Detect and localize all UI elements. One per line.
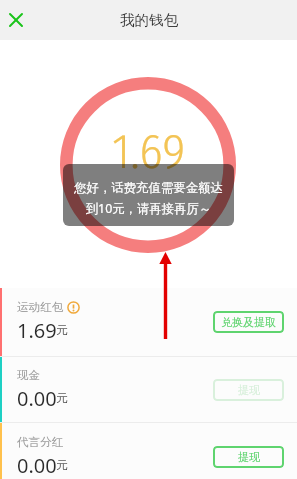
staticText: 代言分红	[17, 435, 64, 450]
staticText: 我的钱包	[120, 11, 178, 29]
staticText: 0.00	[17, 452, 57, 479]
staticText: 提现	[238, 383, 260, 397]
button[interactable]: 运动红包	[0, 288, 297, 356]
staticText: 1.69	[17, 317, 57, 344]
button[interactable]: 现金	[0, 357, 297, 422]
staticText: 您好，话费充值需要金额达 到10元，请再接再厉～	[74, 180, 223, 216]
staticText: 兑换及提取	[221, 315, 276, 329]
staticText: 运动红包	[17, 300, 64, 315]
staticText: 提现	[238, 450, 260, 464]
staticText: 元	[56, 323, 68, 337]
button[interactable]: 兑换及提取	[213, 311, 284, 333]
staticText: 0.00	[17, 385, 57, 412]
button[interactable]: 提现	[213, 379, 284, 401]
staticText: 现金	[17, 368, 41, 383]
button[interactable]: Close	[0, 0, 31, 40]
button[interactable]: 提现	[213, 446, 284, 468]
staticText: 元	[56, 458, 68, 472]
staticText: 1.69	[112, 122, 186, 181]
button[interactable]: 代言分红	[0, 423, 297, 479]
staticText: 元	[56, 391, 68, 405]
